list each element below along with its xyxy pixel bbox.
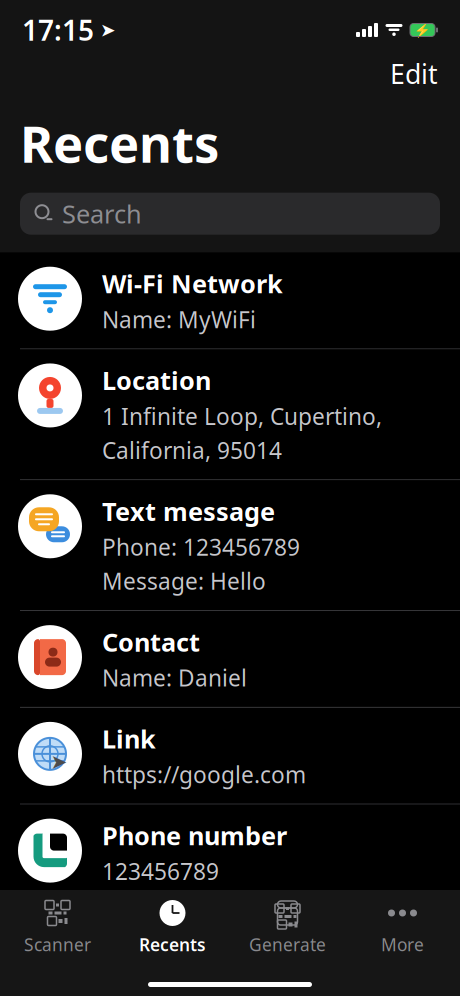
staticText: 1 Infinite Loop, Cupertino, xyxy=(102,401,382,431)
staticText: Wi-Fi Network xyxy=(102,267,283,300)
staticText: Phone: 123456789 xyxy=(102,532,300,562)
staticText: Search xyxy=(62,197,142,230)
staticText: Phone number xyxy=(102,819,287,852)
button[interactable]: Wi-Fi Network xyxy=(0,253,460,349)
staticText: Link xyxy=(102,722,156,755)
staticText: Text message xyxy=(102,494,275,528)
button[interactable]: Contact xyxy=(0,611,460,708)
staticText: ➤ xyxy=(100,19,116,41)
staticText: 1D-Barcode xyxy=(102,915,246,949)
staticText: Location xyxy=(102,363,211,397)
staticText: ➤ xyxy=(50,750,67,773)
staticText: Message: Hello xyxy=(102,566,266,596)
button[interactable]: ➤ xyxy=(0,708,460,805)
staticText: Recents xyxy=(20,109,219,177)
button[interactable]: Generate xyxy=(230,890,345,960)
button[interactable]: Text message xyxy=(0,480,460,611)
staticText: https://google.com xyxy=(102,759,306,790)
staticText: Recents xyxy=(139,933,206,956)
staticText: Scanner xyxy=(24,933,91,956)
staticText: Edit xyxy=(390,56,438,91)
staticText: California, 95014 xyxy=(102,435,282,465)
staticText: More xyxy=(381,933,424,956)
staticText: ⚡ xyxy=(414,22,431,38)
staticText: 123456789 xyxy=(102,953,219,983)
button[interactable]: Edit xyxy=(380,50,448,97)
button[interactable]: 1D-Barcode xyxy=(0,901,460,996)
staticText: Generate xyxy=(249,933,326,956)
staticText: Contact xyxy=(102,625,200,659)
staticText: 123456789 xyxy=(102,856,219,886)
button[interactable]: More xyxy=(345,890,460,960)
button[interactable]: Scanner xyxy=(0,890,115,960)
staticText: Name: Daniel xyxy=(102,663,247,693)
button[interactable]: Phone number xyxy=(0,805,460,901)
button[interactable]: Recents xyxy=(115,890,230,960)
staticText: Name: MyWiFi xyxy=(102,304,256,334)
button[interactable]: Location xyxy=(0,349,460,480)
staticText: 17:15 xyxy=(22,11,94,49)
